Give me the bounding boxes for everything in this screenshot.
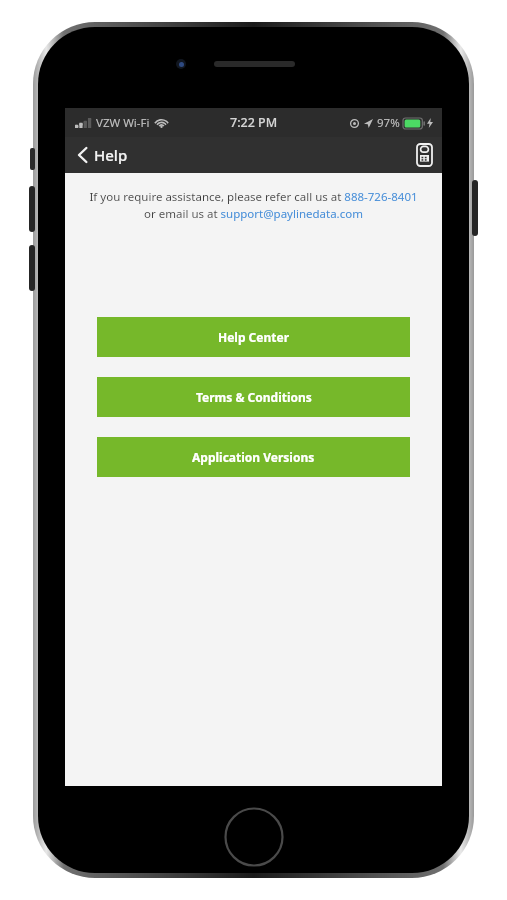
staticText: Help Center: [218, 329, 290, 345]
button[interactable]: Help Center: [97, 317, 410, 357]
button[interactable]: Help: [65, 139, 140, 171]
staticText: Terms & Conditions: [196, 389, 312, 405]
staticText: Application Versions: [192, 449, 315, 465]
staticText: 7:22 PM: [230, 114, 278, 131]
other: Home: [224, 807, 284, 867]
staticText: If you require assistance, please refer …: [85, 189, 422, 221]
staticText: Help: [94, 145, 128, 165]
button[interactable]: Application Versions: [97, 437, 410, 477]
button[interactable]: Card reader: [407, 139, 442, 171]
staticText: 97%: [377, 115, 400, 131]
button[interactable]: Terms & Conditions: [97, 377, 410, 417]
staticText: VZW Wi-Fi: [96, 115, 150, 131]
